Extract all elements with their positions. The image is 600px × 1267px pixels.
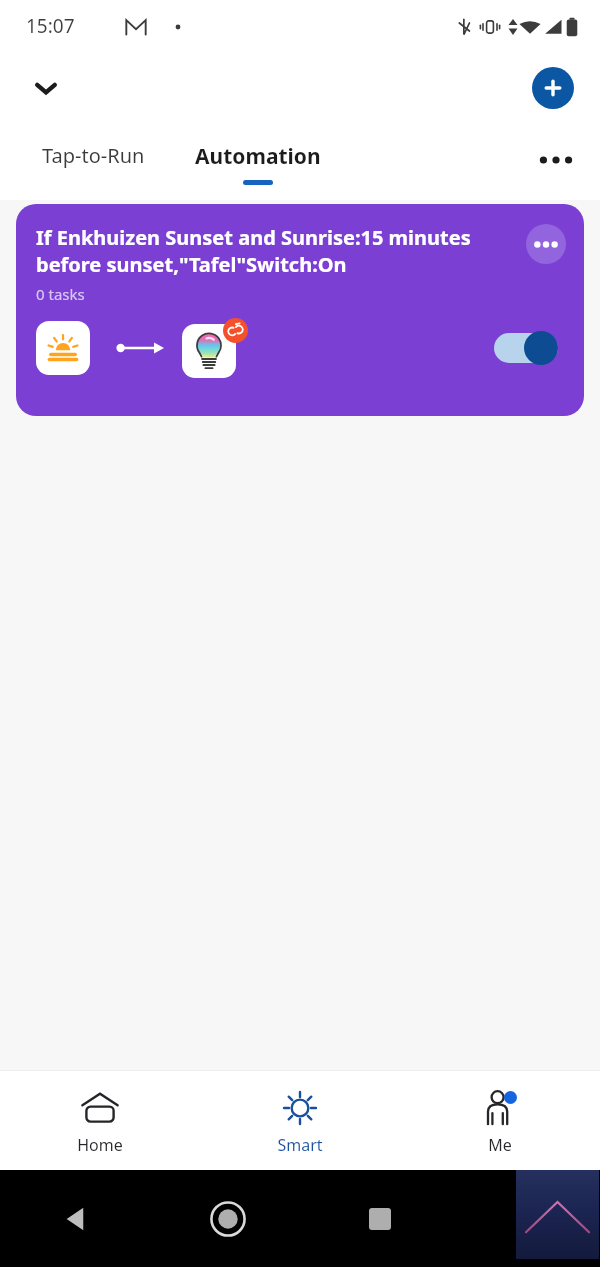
button[interactable]: Home xyxy=(0,1078,200,1164)
button[interactable]: Add automation xyxy=(532,67,574,109)
staticText: Me xyxy=(488,1134,512,1156)
button[interactable]: Home xyxy=(200,1191,256,1247)
button[interactable]: Back xyxy=(48,1191,104,1247)
staticText: If Enkhuizen Sunset and Sunrise:15 minut… xyxy=(36,224,518,278)
button[interactable]: Recent apps xyxy=(352,1191,408,1247)
staticText: Tap-to-Run xyxy=(42,142,145,169)
button[interactable]: Smart xyxy=(200,1078,400,1164)
staticText: Home xyxy=(77,1134,123,1156)
button[interactable]: Automation options xyxy=(526,224,566,264)
button[interactable]: More options xyxy=(534,138,578,182)
staticText: 0 tasks xyxy=(36,284,85,304)
button[interactable]: Automation xyxy=(193,134,323,193)
button[interactable]: If Enkhuizen Sunset and Sunrise:15 minut… xyxy=(16,204,584,416)
button[interactable]: Tap-to-Run xyxy=(40,134,147,177)
staticText: 15:07 xyxy=(26,13,75,39)
button[interactable]: Me xyxy=(400,1078,600,1164)
staticText: Automation xyxy=(195,142,321,171)
button[interactable]: Expand home selector xyxy=(24,66,68,110)
staticText: Smart xyxy=(277,1134,323,1156)
button[interactable]: Automation enabled toggle xyxy=(494,331,558,365)
